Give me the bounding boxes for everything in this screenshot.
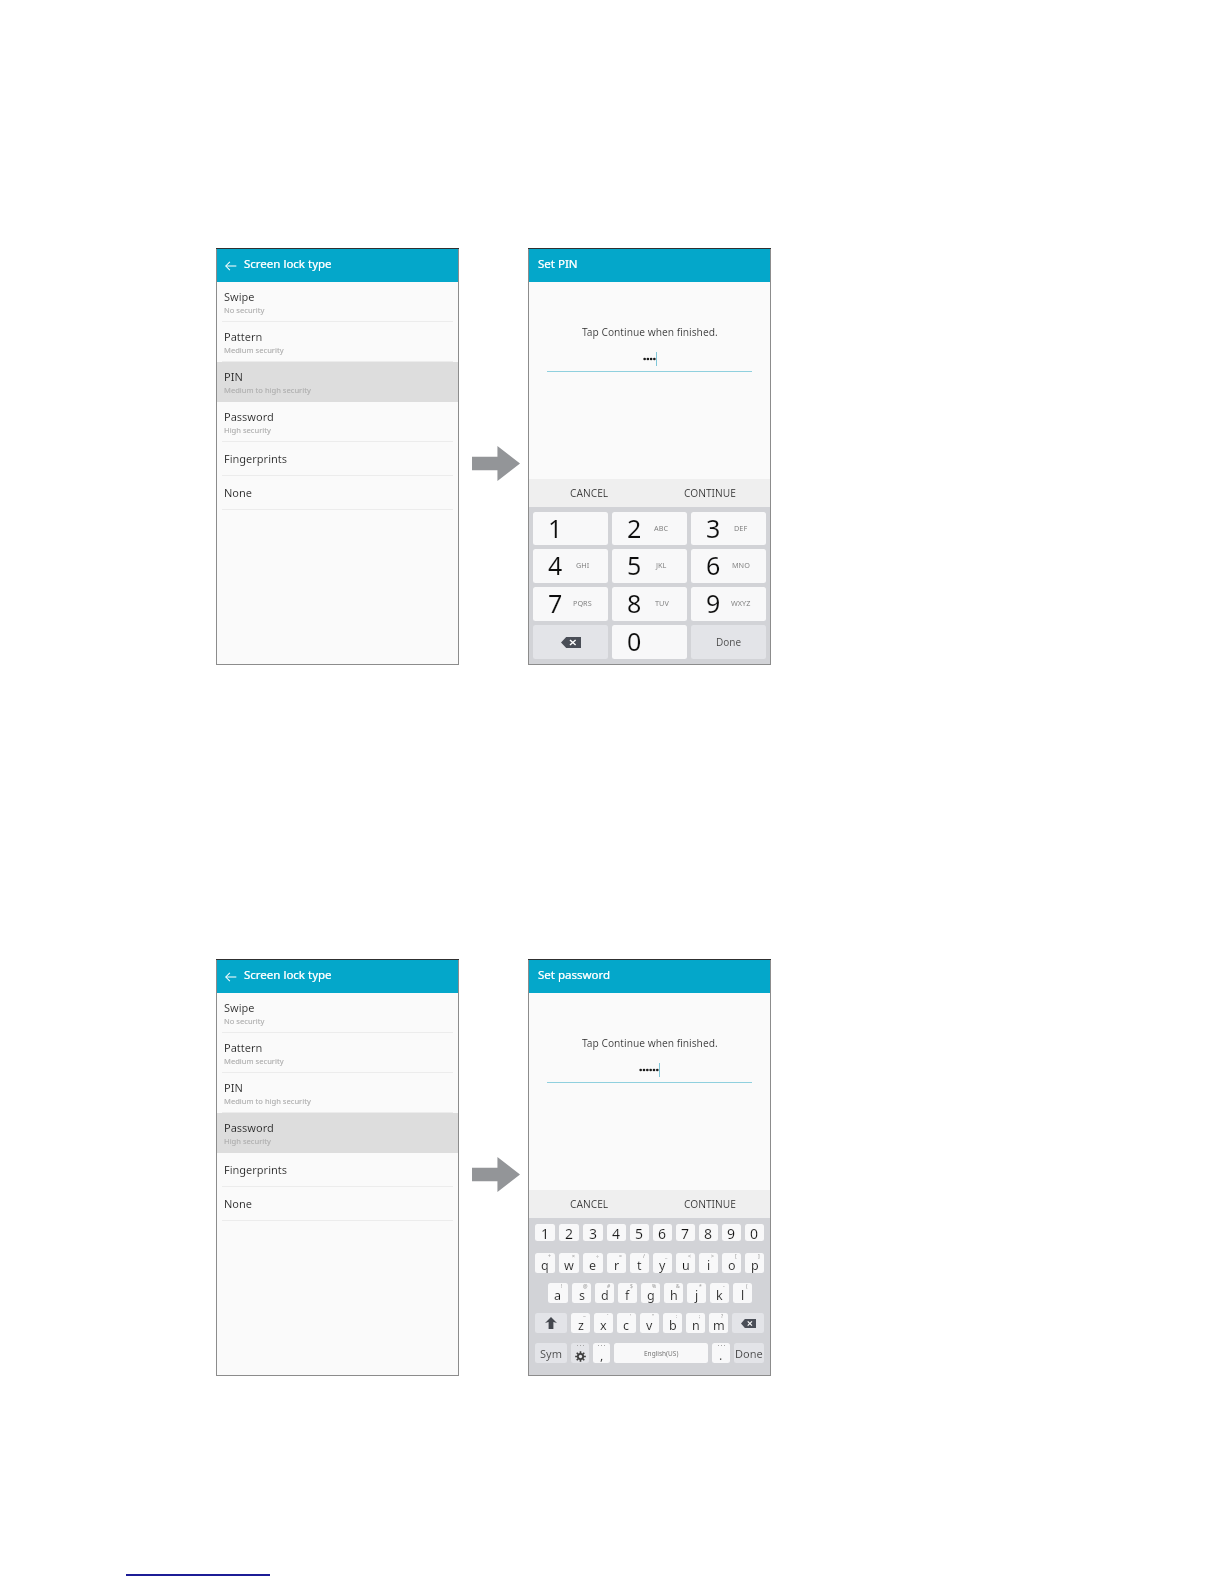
button[interactable]: !	[548, 1283, 568, 1303]
button[interactable]: 9	[691, 587, 766, 621]
staticText: Screen lock type	[244, 967, 332, 983]
staticText: <	[688, 1253, 691, 1260]
button[interactable]: Swipe	[217, 282, 458, 322]
button[interactable]: ?	[709, 1313, 728, 1333]
button[interactable]: ]	[745, 1253, 764, 1273]
button[interactable]: English(US)	[614, 1343, 708, 1363]
button[interactable]: Swipe	[217, 993, 458, 1033]
button[interactable]: @	[572, 1283, 591, 1303]
button[interactable]: Backspace	[533, 625, 608, 659]
button[interactable]: Pattern	[217, 322, 458, 362]
button[interactable]: &	[664, 1283, 683, 1303]
button[interactable]: None	[217, 476, 458, 510]
button[interactable]: <	[676, 1253, 695, 1273]
button[interactable]: 2	[559, 1224, 579, 1241]
button[interactable]: Settings	[571, 1343, 589, 1363]
button[interactable]: `	[594, 1313, 613, 1333]
button[interactable]: %	[641, 1283, 660, 1303]
staticText: 8	[627, 587, 642, 620]
button[interactable]: Back	[217, 249, 458, 282]
button[interactable]: 7	[533, 587, 608, 621]
button[interactable]: 5	[612, 549, 687, 583]
button[interactable]: Back	[217, 249, 244, 282]
button[interactable]: CONTINUE	[649, 1190, 770, 1218]
staticText: '	[630, 1313, 632, 1320]
button[interactable]: 8	[699, 1224, 718, 1241]
staticText: Done	[716, 635, 742, 649]
button[interactable]: Done	[691, 625, 766, 659]
button[interactable]: 4	[607, 1224, 626, 1241]
button[interactable]: :	[663, 1313, 682, 1333]
button[interactable]: +	[535, 1253, 555, 1273]
button[interactable]: Back	[217, 960, 244, 993]
button[interactable]: 7	[676, 1224, 695, 1241]
button[interactable]: *	[687, 1283, 706, 1303]
button[interactable]: ,	[593, 1343, 610, 1363]
button[interactable]: '	[617, 1313, 636, 1333]
button[interactable]: Back	[217, 960, 458, 993]
button[interactable]: Sym	[535, 1343, 567, 1363]
button[interactable]: Done	[734, 1343, 764, 1363]
button[interactable]: 5	[630, 1224, 649, 1241]
button[interactable]: None	[217, 1187, 458, 1221]
button[interactable]: $	[618, 1283, 637, 1303]
staticText: [	[735, 1253, 737, 1260]
button[interactable]: PIN	[217, 1073, 458, 1113]
button[interactable]: 3	[691, 512, 766, 545]
button[interactable]: 0	[745, 1224, 764, 1241]
staticText: PIN	[224, 369, 243, 384]
button[interactable]: >	[699, 1253, 718, 1273]
button[interactable]: Backspace	[732, 1313, 764, 1333]
button[interactable]: 1	[533, 512, 608, 545]
button[interactable]: Fingerprints	[217, 1153, 458, 1187]
button[interactable]: [	[722, 1253, 741, 1273]
button[interactable]: -	[710, 1283, 729, 1303]
button[interactable]: Password	[217, 1113, 458, 1153]
staticText: 4	[612, 1224, 621, 1241]
button[interactable]: ÷	[583, 1253, 603, 1273]
button[interactable]: 3	[583, 1224, 603, 1241]
button[interactable]: CANCEL	[529, 479, 649, 507]
staticText: Medium to high security	[224, 1096, 311, 1106]
button[interactable]: ~	[571, 1313, 590, 1333]
button[interactable]: (	[733, 1283, 752, 1303]
button[interactable]: 6	[653, 1224, 672, 1241]
button[interactable]: 4	[533, 549, 608, 583]
button[interactable]: PIN	[217, 362, 458, 402]
staticText: m	[713, 1317, 725, 1333]
button[interactable]: ×	[559, 1253, 579, 1273]
button[interactable]: CONTINUE	[649, 479, 770, 507]
button[interactable]: Fingerprints	[217, 442, 458, 476]
staticText: v	[646, 1317, 653, 1333]
button[interactable]: CANCEL	[529, 1190, 649, 1218]
button[interactable]: _	[653, 1253, 672, 1273]
button[interactable]: ;	[686, 1313, 705, 1333]
button[interactable]: Pattern	[217, 1033, 458, 1073]
button[interactable]: Password	[217, 402, 458, 442]
button[interactable]: /	[630, 1253, 649, 1273]
button[interactable]: 6	[691, 549, 766, 583]
button[interactable]: Set PIN	[538, 249, 770, 282]
button[interactable]: 8	[612, 587, 687, 621]
button[interactable]: #	[595, 1283, 614, 1303]
staticText: Medium security	[224, 345, 284, 355]
staticText: CONTINUE	[684, 1197, 736, 1211]
button[interactable]: 9	[722, 1224, 741, 1241]
staticText: ×	[572, 1253, 575, 1260]
staticText: 0	[627, 625, 642, 658]
staticText: WXYZ	[731, 598, 751, 608]
staticText: u	[682, 1257, 690, 1273]
button[interactable]: =	[607, 1253, 626, 1273]
staticText: 2	[565, 1224, 574, 1241]
staticText: #	[607, 1283, 611, 1290]
button[interactable]: 0	[612, 625, 687, 659]
staticText: 5	[627, 549, 642, 582]
button[interactable]: .	[712, 1343, 730, 1363]
button[interactable]: 2	[612, 512, 687, 545]
staticText: o	[728, 1257, 736, 1273]
button[interactable]: Set password	[538, 960, 770, 993]
button[interactable]: 1	[535, 1224, 555, 1241]
staticText: PQRS	[573, 598, 592, 608]
button[interactable]: Shift	[535, 1313, 567, 1333]
button[interactable]: "	[640, 1313, 659, 1333]
